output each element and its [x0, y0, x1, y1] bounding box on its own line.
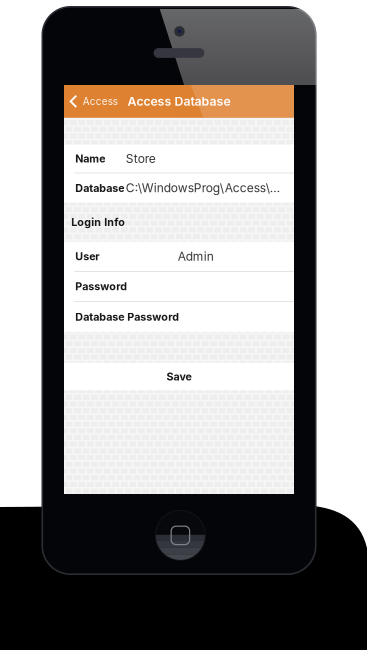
button[interactable]: Password — [64, 272, 294, 302]
staticText: User — [75, 250, 99, 263]
button[interactable]: Name — [64, 144, 294, 173]
staticText: Name — [75, 152, 105, 165]
staticText: Admin — [178, 249, 214, 264]
staticText: Access — [83, 95, 118, 107]
staticText: Login Info — [71, 216, 125, 229]
button[interactable]: Database — [64, 173, 294, 202]
staticText: Store — [126, 151, 156, 166]
staticText: Database Password — [75, 310, 179, 323]
staticText: Save — [166, 370, 191, 383]
button[interactable]: Save — [64, 363, 294, 390]
staticText: Password — [75, 280, 127, 293]
staticText: Access Database — [127, 94, 230, 109]
staticText: C:\WindowsProg\Access\… — [126, 181, 280, 195]
button[interactable]: User — [64, 242, 294, 272]
staticText: Database — [75, 181, 124, 194]
button[interactable]: Database Password — [64, 302, 294, 332]
button[interactable]: Access — [64, 85, 122, 118]
